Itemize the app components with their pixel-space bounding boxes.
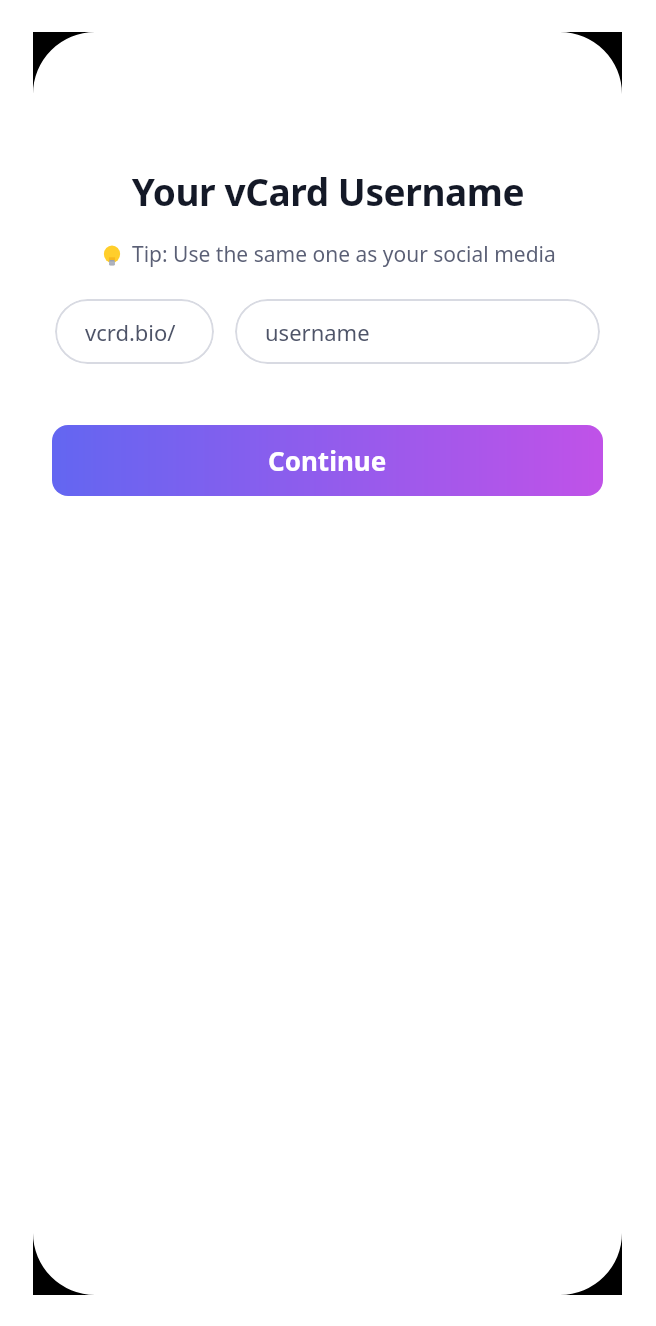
staticText: username [265,317,370,347]
staticText: Your vCard Username [24,166,632,216]
button[interactable]: Domain prefix vcrd.bio/ [55,299,214,364]
button[interactable]: Continue [52,425,603,496]
button[interactable]: Username input [235,299,600,364]
staticText: Tip: Use the same one as your social med… [132,240,556,269]
staticText: Continue [268,443,387,478]
staticText: vcrd.bio/ [85,317,176,347]
